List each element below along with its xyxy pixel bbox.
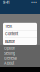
staticText: Button [5, 39, 15, 44]
button[interactable]: About [0, 61, 40, 66]
button[interactable]: Option [0, 46, 40, 51]
button[interactable]: Button [3, 38, 37, 45]
staticText: Text [5, 24, 12, 29]
button[interactable]: Setting [0, 51, 40, 56]
staticText: Setting [4, 51, 15, 56]
button[interactable]: Text [3, 23, 37, 30]
staticText: About [4, 61, 14, 66]
button[interactable]: Content [3, 30, 37, 38]
staticText: General [4, 56, 17, 61]
staticText: Option [4, 46, 15, 51]
staticText: 9:41 [3, 0, 9, 5]
staticText: Content [5, 32, 18, 36]
staticText: ••• [31, 0, 37, 5]
button[interactable]: General [0, 56, 40, 61]
